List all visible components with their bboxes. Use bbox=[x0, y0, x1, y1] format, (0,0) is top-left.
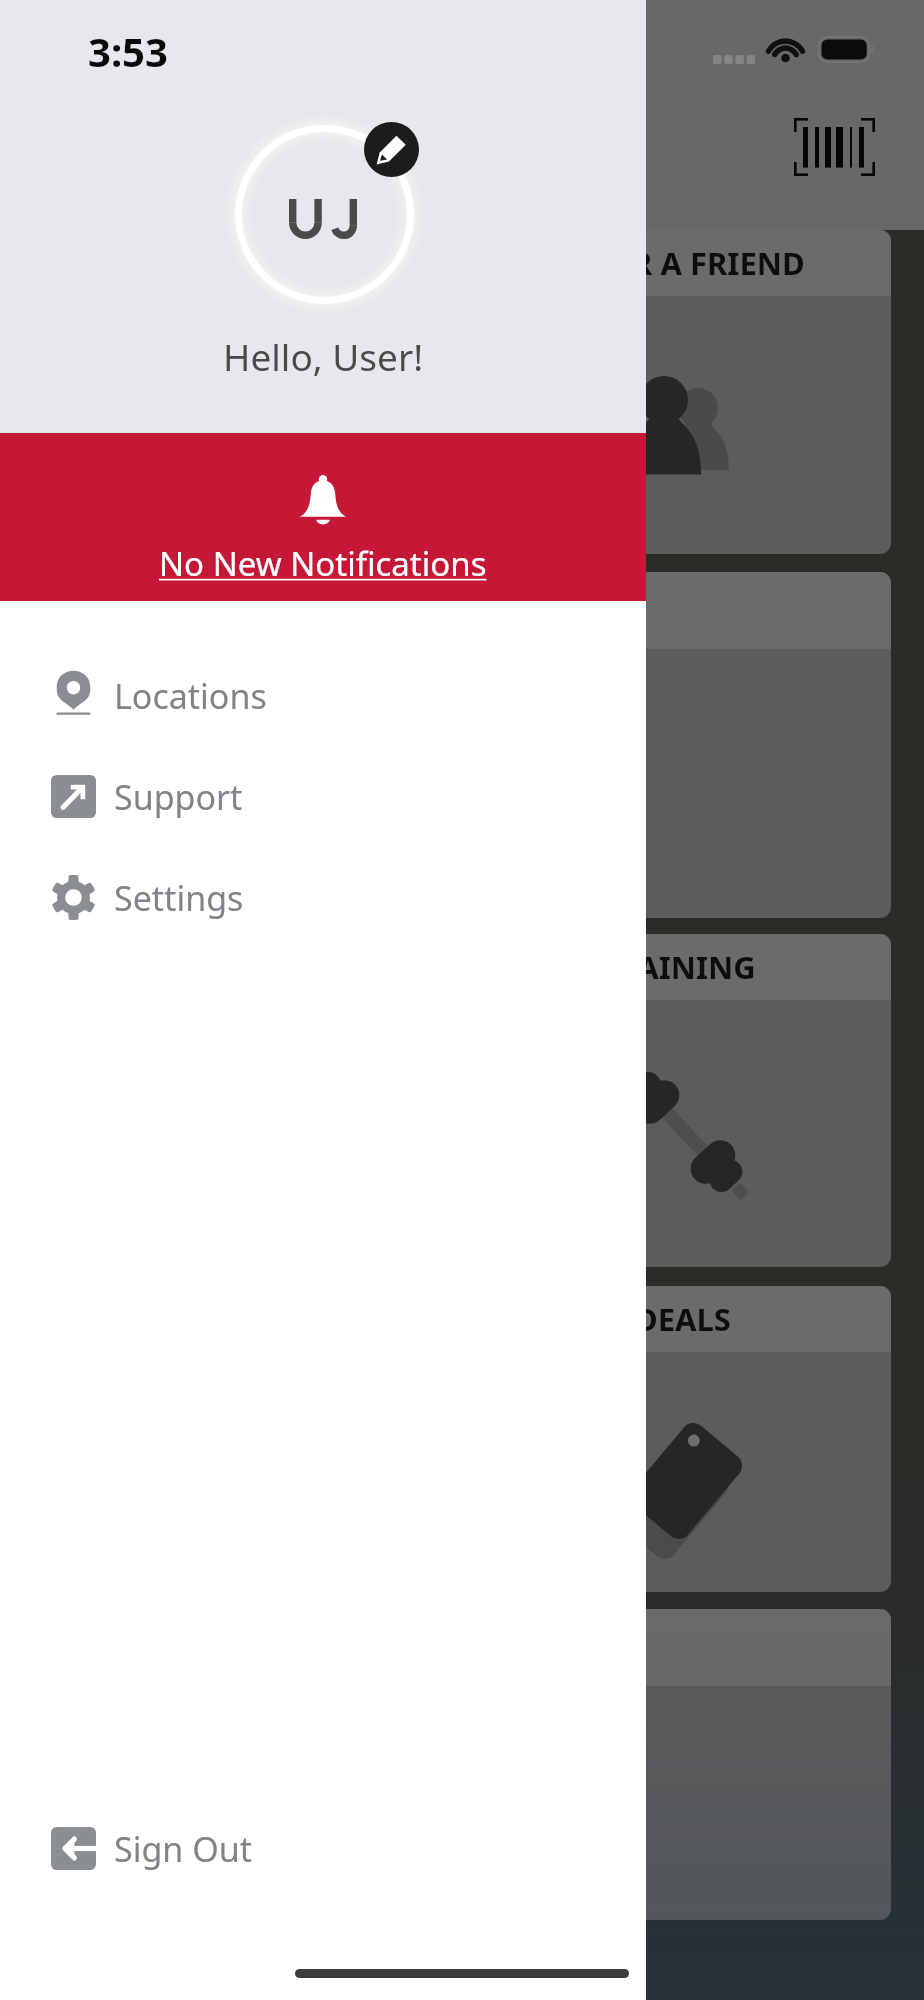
button[interactable]: No New Notifications bbox=[0, 433, 646, 601]
button[interactable]: Scan barcode bbox=[794, 118, 875, 176]
staticText: Hello, User! bbox=[223, 331, 424, 381]
button[interactable]: Edit profile photo bbox=[364, 122, 419, 177]
staticText: TRAINING bbox=[599, 946, 756, 988]
staticText: Settings bbox=[114, 875, 244, 921]
button[interactable]: Settings bbox=[0, 847, 646, 948]
staticText: REFER A FRIEND bbox=[560, 242, 805, 284]
button[interactable]: Sign Out bbox=[0, 1798, 646, 1899]
button[interactable]: Locations bbox=[0, 645, 646, 746]
staticText: 3:53 bbox=[88, 24, 168, 78]
staticText: No New Notifications bbox=[159, 541, 487, 586]
button[interactable]: Support bbox=[0, 746, 646, 847]
staticText: DEALS bbox=[635, 1298, 731, 1340]
staticText: Sign Out bbox=[114, 1826, 253, 1872]
staticText: Locations bbox=[114, 673, 267, 719]
staticText: Support bbox=[114, 774, 243, 820]
